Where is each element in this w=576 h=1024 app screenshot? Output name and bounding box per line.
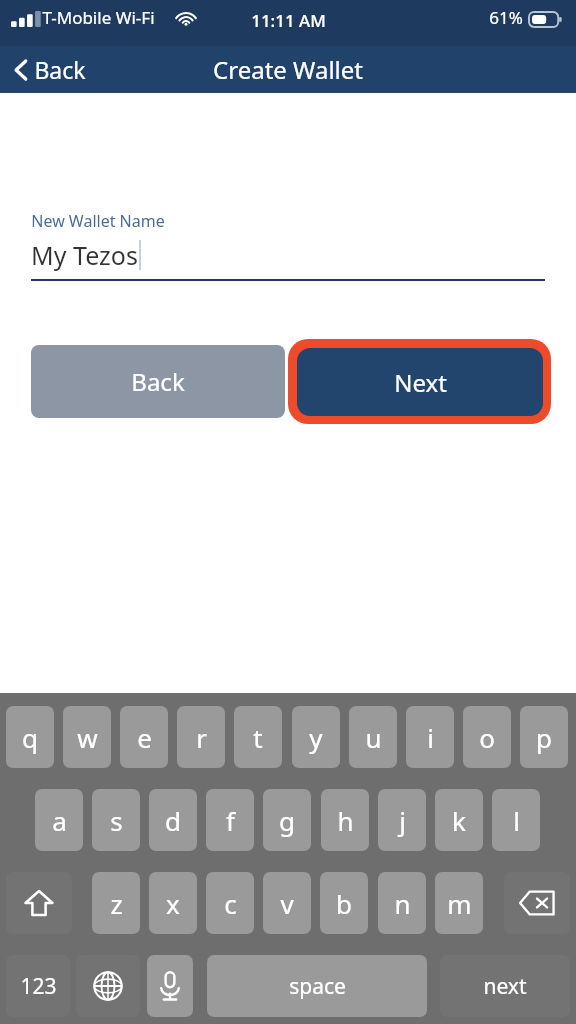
button[interactable]: i <box>406 706 454 768</box>
button[interactable]: Change keyboard <box>76 955 140 1017</box>
staticText: q <box>22 720 38 755</box>
button[interactable]: z <box>92 872 140 934</box>
staticText: 123 <box>20 972 57 1001</box>
staticText: m <box>447 886 472 921</box>
staticText: z <box>110 886 123 921</box>
button[interactable]: b <box>320 872 368 934</box>
staticText: p <box>536 720 552 755</box>
button[interactable]: d <box>149 789 197 851</box>
staticText: s <box>110 803 123 838</box>
button[interactable]: Back <box>31 345 285 418</box>
staticText: New Wallet Name <box>31 210 165 232</box>
staticText: x <box>166 886 180 921</box>
button[interactable]: u <box>349 706 397 768</box>
button[interactable]: k <box>435 789 483 851</box>
staticText: e <box>137 720 152 755</box>
button[interactable]: Shift <box>6 872 72 934</box>
button[interactable]: y <box>292 706 340 768</box>
staticText: n <box>394 886 411 921</box>
staticText: 61% <box>489 6 523 29</box>
staticText: l <box>513 803 520 838</box>
staticText: v <box>280 886 294 921</box>
button[interactable]: s <box>92 789 140 851</box>
staticText: c <box>224 886 237 921</box>
button[interactable]: c <box>206 872 254 934</box>
button[interactable]: h <box>321 789 369 851</box>
staticText: h <box>337 803 354 838</box>
staticText: My Tezos <box>31 238 138 272</box>
button[interactable]: Backspace <box>504 872 570 934</box>
staticText: o <box>479 720 495 755</box>
button[interactable]: a <box>35 789 83 851</box>
staticText: w <box>77 720 98 755</box>
button[interactable]: q <box>6 706 54 768</box>
staticText: 11:11 AM <box>251 9 326 32</box>
button[interactable]: x <box>149 872 197 934</box>
staticText: f <box>226 803 235 838</box>
staticText: Back <box>34 54 86 85</box>
staticText: d <box>165 803 181 838</box>
button[interactable]: Next <box>288 339 551 424</box>
button[interactable]: e <box>120 706 168 768</box>
button[interactable]: v <box>263 872 311 934</box>
button[interactable]: space <box>207 955 427 1017</box>
staticText: y <box>309 720 323 755</box>
button[interactable]: m <box>435 872 483 934</box>
button[interactable]: Back <box>0 46 98 93</box>
button[interactable]: o <box>463 706 511 768</box>
button[interactable]: Dictate <box>147 955 193 1017</box>
staticText: g <box>279 803 295 838</box>
button[interactable]: 123 <box>6 955 70 1017</box>
staticText: b <box>336 886 352 921</box>
staticText: Create Wallet <box>213 53 363 86</box>
staticText: Next <box>394 366 447 399</box>
staticText: k <box>452 803 466 838</box>
button[interactable]: n <box>378 872 426 934</box>
button[interactable]: l <box>492 789 540 851</box>
staticText: i <box>427 720 434 755</box>
button[interactable]: g <box>263 789 311 851</box>
staticText: u <box>365 720 382 755</box>
staticText: next <box>483 972 527 1001</box>
button[interactable]: next <box>440 955 570 1017</box>
staticText: j <box>399 803 406 838</box>
button[interactable]: r <box>177 706 225 768</box>
staticText: Back <box>131 365 185 398</box>
button[interactable]: t <box>234 706 282 768</box>
button[interactable]: j <box>378 789 426 851</box>
staticText: r <box>196 720 207 755</box>
staticText: a <box>52 803 67 838</box>
staticText: T-Mobile Wi-Fi <box>42 6 155 29</box>
button[interactable]: p <box>520 706 568 768</box>
button[interactable]: w <box>63 706 111 768</box>
staticText: space <box>289 972 346 1001</box>
button[interactable]: f <box>206 789 254 851</box>
staticText: t <box>253 720 263 755</box>
